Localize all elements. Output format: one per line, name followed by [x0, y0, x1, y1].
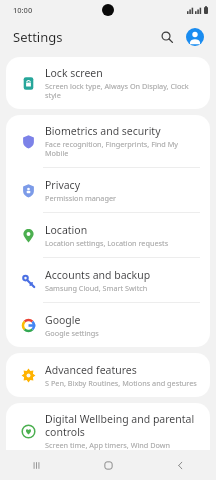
button[interactable]: Account: [182, 24, 208, 50]
staticText: S Pen, Bixby Routines, Motions and gestu…: [45, 378, 197, 388]
staticText: Face recognition, Fingerprints, Find My …: [45, 139, 198, 158]
staticText: Location settings, Location requests: [45, 238, 169, 248]
button[interactable]: Privacy: [6, 168, 210, 213]
staticText: Accounts and backup: [45, 268, 151, 282]
button[interactable]: Accounts and backup: [6, 258, 210, 303]
staticText: Screen lock type, Always On Display, Clo…: [45, 81, 198, 100]
button[interactable]: Back: [144, 450, 216, 480]
staticText: Screen time, App timers, Wind Down: [45, 440, 171, 450]
staticText: Location: [45, 223, 88, 237]
button[interactable]: Recents: [0, 450, 72, 480]
button[interactable]: Home: [72, 450, 144, 480]
button[interactable]: Lock screen: [6, 57, 210, 109]
staticText: Lock screen: [45, 66, 103, 80]
staticText: Permission manager: [45, 193, 117, 203]
staticText: Settings: [13, 28, 63, 46]
staticText: Advanced features: [45, 363, 137, 377]
staticText: Samsung Cloud, Smart Switch: [45, 283, 148, 293]
button[interactable]: Location: [6, 213, 210, 258]
staticText: Digital Wellbeing and parental controls: [45, 412, 198, 439]
staticText: Google: [45, 313, 81, 327]
staticText: Privacy: [45, 178, 81, 192]
button[interactable]: Digital Wellbeing and parental controls: [6, 403, 210, 460]
staticText: Google settings: [45, 328, 99, 338]
button[interactable]: Google: [6, 303, 210, 347]
staticText: Biometrics and security: [45, 124, 161, 138]
button[interactable]: Search: [154, 24, 180, 50]
button[interactable]: Device care: [6, 460, 210, 480]
button[interactable]: Advanced features: [6, 353, 210, 397]
staticText: 10:00: [13, 5, 33, 15]
button[interactable]: Biometrics and security: [6, 115, 210, 168]
